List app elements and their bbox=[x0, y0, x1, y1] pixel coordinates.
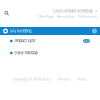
button[interactable]: My Meeting bbox=[0, 27, 100, 35]
staticText: Product sync bbox=[15, 39, 36, 43]
staticText: My Meeting bbox=[10, 29, 31, 33]
button[interactable]: Product sync bbox=[0, 35, 100, 47]
staticText: Meetings · Recordings · Preferences bbox=[39, 15, 97, 18]
button[interactable]: Daily standup bbox=[0, 47, 100, 59]
staticText: Cisco Webex Meetings bbox=[53, 8, 93, 13]
staticText: Daily standup bbox=[15, 51, 38, 55]
button[interactable]: Join bbox=[83, 39, 90, 43]
button[interactable]: Search bbox=[3, 9, 11, 17]
staticText: Join bbox=[83, 39, 90, 43]
staticText: Copyright © 2024 Cisco · Privacy · Terms bbox=[13, 78, 87, 81]
staticText: • bbox=[95, 8, 97, 13]
